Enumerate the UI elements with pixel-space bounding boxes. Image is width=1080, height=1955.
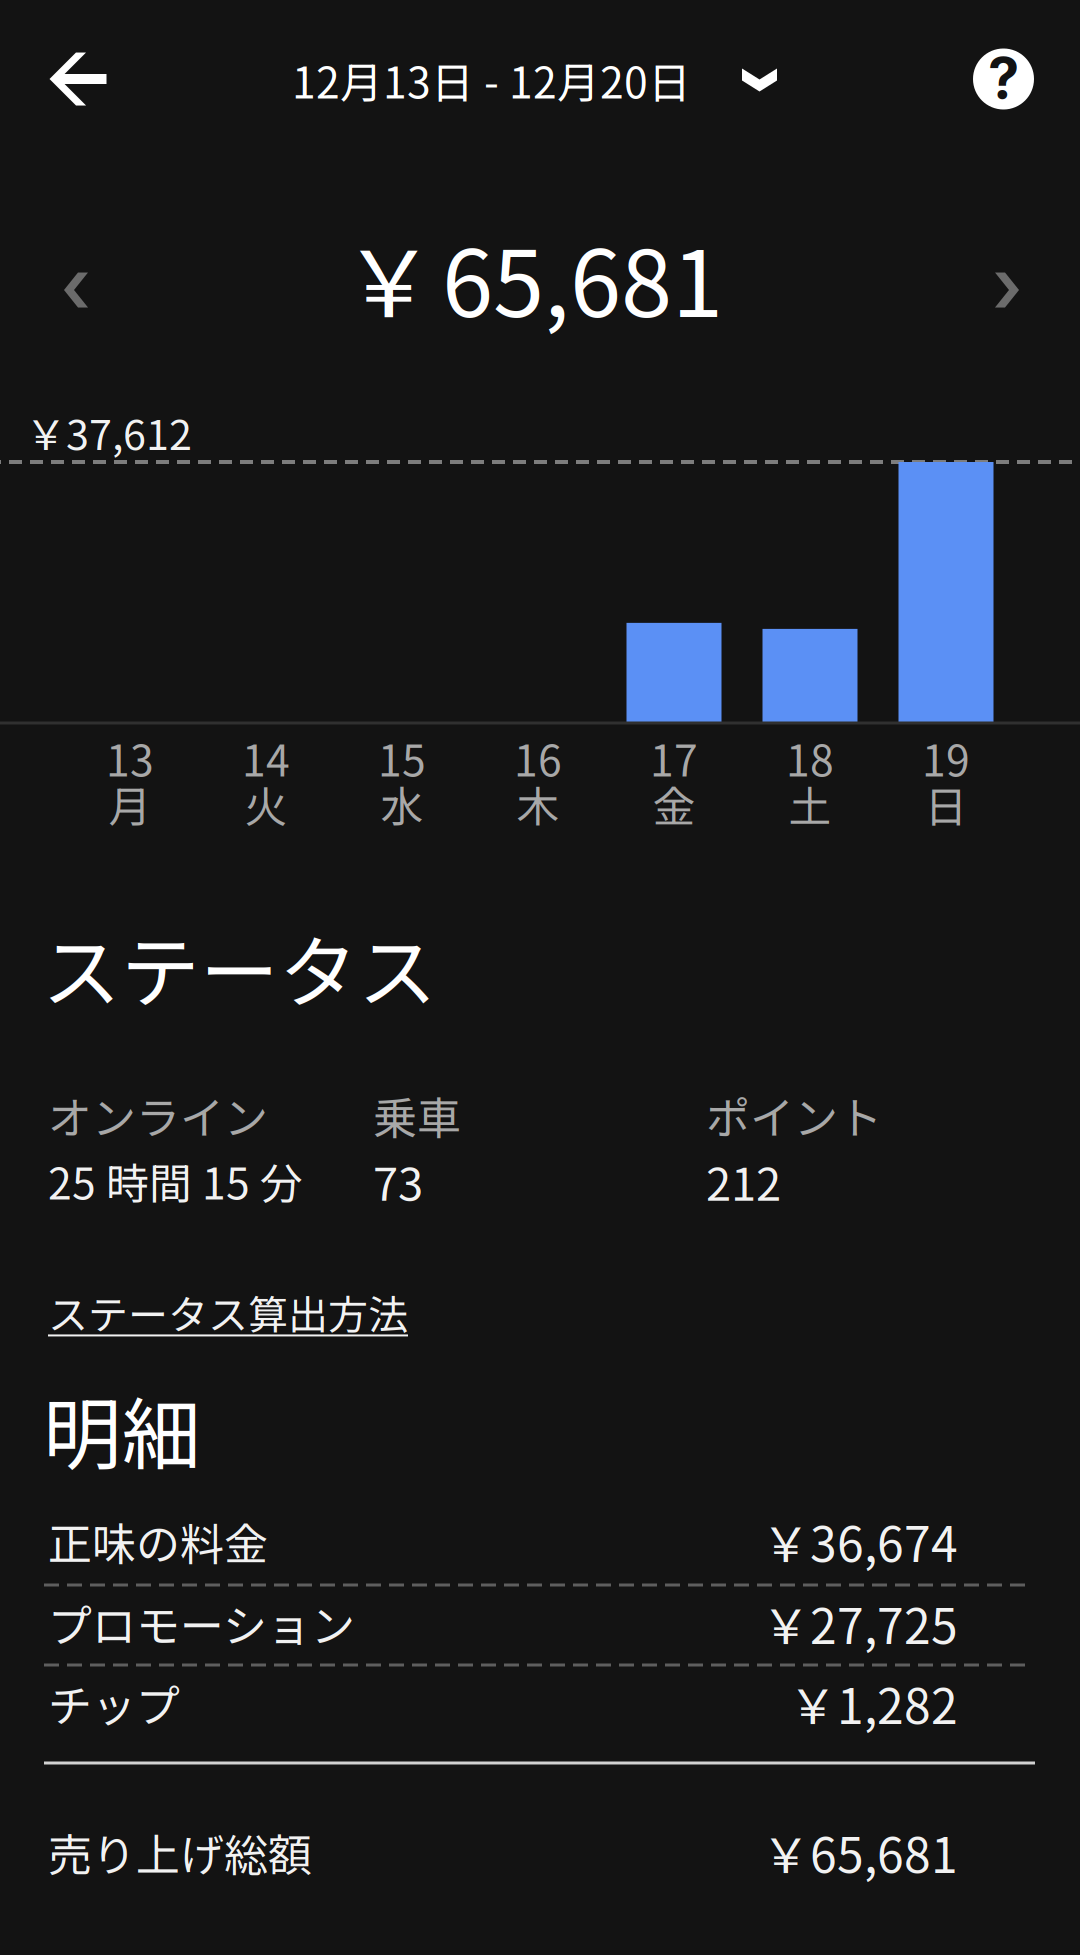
staticText: 正味の料金 (48, 1509, 268, 1573)
staticText: チップ (48, 1671, 180, 1735)
staticText: ￥1,282 (789, 1668, 958, 1738)
staticText: ステータス (42, 910, 437, 1024)
staticText: 12月13日 - 12月20日 (292, 49, 691, 111)
staticText: 火 (244, 773, 287, 835)
staticText: 17 (650, 727, 698, 789)
staticText: 明細 (43, 1372, 201, 1486)
staticText: 19 (922, 727, 970, 789)
staticText: 25 時間 15 分 (48, 1150, 303, 1212)
staticText: 18 (786, 727, 834, 789)
button[interactable]: 12月13日 - 12月20日 (278, 23, 791, 137)
button[interactable]: ステータス算出方法 (48, 1273, 408, 1351)
staticText: ? (988, 44, 1019, 112)
staticText: ￥36,674 (762, 1506, 958, 1576)
button[interactable]: Help (973, 23, 1034, 135)
staticText: 金 (652, 773, 695, 835)
staticText: 乗車 (373, 1083, 461, 1147)
staticText: ￥65,681 (762, 1817, 958, 1887)
staticText: 15 (378, 727, 426, 789)
staticText: 日 (924, 773, 967, 835)
staticText: ￥ (343, 210, 435, 344)
staticText: 木 (516, 773, 559, 835)
staticText: 73 (373, 1148, 423, 1214)
staticText: 売り上げ総額 (48, 1820, 312, 1884)
staticText: 212 (706, 1148, 781, 1214)
staticText: ポイント (706, 1083, 882, 1147)
button[interactable]: Next week (957, 240, 1057, 340)
staticText: オンライン (48, 1083, 268, 1147)
staticText: 土 (788, 773, 831, 835)
button[interactable]: Back (22, 23, 134, 135)
staticText: 16 (514, 727, 562, 789)
staticText: ￥27,725 (762, 1588, 958, 1658)
staticText: 13 (106, 727, 154, 789)
staticText: 水 (380, 773, 423, 835)
staticText: プロモーション (48, 1591, 355, 1655)
button[interactable]: Previous week (26, 240, 126, 340)
staticText: 65,681 (442, 210, 723, 344)
staticText: 月 (108, 773, 151, 835)
staticText: ステータス算出方法 (48, 1283, 408, 1341)
staticText: ￥37,612 (25, 402, 192, 462)
staticText: 14 (242, 727, 290, 789)
